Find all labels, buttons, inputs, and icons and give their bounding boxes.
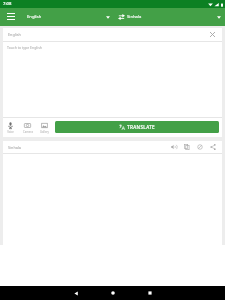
staticText: English (8, 32, 21, 37)
button[interactable]: English (22, 8, 114, 26)
staticText: Camera (23, 130, 33, 134)
button[interactable]: Gallery (36, 118, 53, 137)
button[interactable]: Sinhala (127, 8, 225, 26)
button[interactable]: Back (66, 286, 86, 300)
button[interactable]: Voice (2, 118, 19, 137)
staticText: TRANSLATE (127, 124, 156, 130)
staticText: Voice (7, 130, 14, 134)
staticText: Sinhala (8, 145, 21, 150)
button[interactable]: Home (103, 286, 123, 300)
staticText: Gallery (40, 130, 49, 134)
button[interactable]: Swap languages (114, 8, 128, 26)
button[interactable]: Clear text (206, 28, 219, 41)
staticText: Touch to type English (7, 45, 43, 50)
button[interactable]: Open navigation menu (0, 8, 22, 26)
button[interactable]: Camera (19, 118, 36, 137)
staticText: 7:08 (3, 1, 12, 7)
staticText: English (27, 14, 42, 20)
button[interactable]: Copy (180, 141, 193, 153)
button[interactable]: TRANSLATE (55, 121, 219, 133)
button[interactable]: Share (206, 141, 219, 153)
button[interactable]: Rate translation (193, 141, 206, 153)
button[interactable]: Listen (167, 141, 180, 153)
staticText: Sinhala (127, 14, 142, 20)
button[interactable]: Recent apps (140, 286, 160, 300)
